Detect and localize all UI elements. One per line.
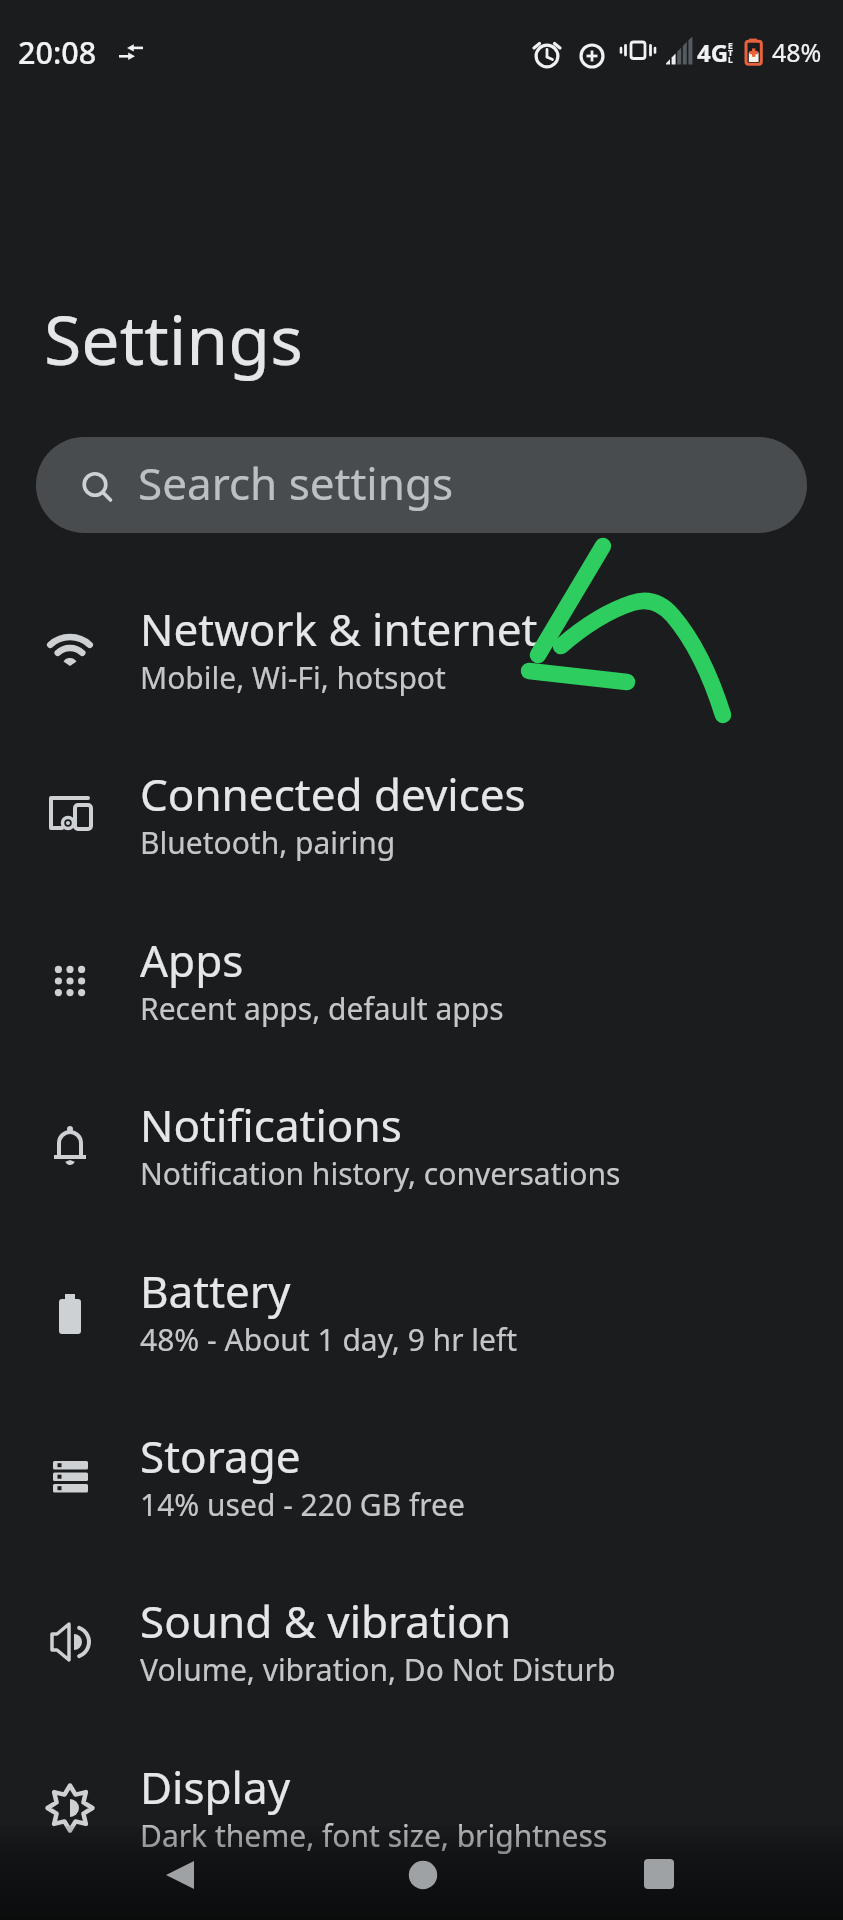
- staticText: Search settings: [138, 453, 454, 513]
- staticText: Storage: [140, 1426, 301, 1486]
- staticText: Notification history, conversations: [140, 1153, 621, 1194]
- staticText: Bluetooth, pairing: [140, 822, 396, 863]
- staticText: Settings: [44, 292, 303, 385]
- staticText: Display: [140, 1757, 291, 1817]
- button[interactable]: Notifications: [0, 1067, 843, 1232]
- staticText: Sound & vibration: [140, 1591, 512, 1651]
- button[interactable]: Storage: [0, 1398, 843, 1563]
- staticText: Connected devices: [140, 764, 526, 824]
- staticText: Mobile, Wi-Fi, hotspot: [140, 657, 446, 698]
- button[interactable]: Apps: [0, 902, 843, 1067]
- button[interactable]: [562, 1826, 843, 1920]
- staticText: E T L: [728, 40, 733, 66]
- button[interactable]: Battery: [0, 1233, 843, 1398]
- staticText: Recent apps, default apps: [140, 988, 504, 1029]
- button[interactable]: Sound & vibration: [0, 1563, 843, 1728]
- staticText: Dark theme, font size, brightness: [140, 1815, 608, 1856]
- staticText: Battery: [140, 1261, 291, 1321]
- staticText: 20:08: [18, 31, 97, 73]
- staticText: Apps: [140, 930, 244, 990]
- button[interactable]: Connected devices: [0, 736, 843, 901]
- button[interactable]: Network & internet: [0, 571, 843, 736]
- button[interactable]: Search settings: [36, 437, 807, 533]
- button[interactable]: [281, 1826, 562, 1920]
- staticText: 48% - About 1 day, 9 hr left: [140, 1319, 518, 1360]
- button[interactable]: [0, 1826, 281, 1920]
- staticText: Notifications: [140, 1095, 402, 1155]
- staticText: Network & internet: [140, 599, 538, 659]
- staticText: 14% used - 220 GB free: [140, 1484, 465, 1525]
- button[interactable]: Display: [0, 1729, 843, 1894]
- staticText: 4G: [697, 36, 729, 69]
- staticText: Volume, vibration, Do Not Disturb: [140, 1649, 616, 1690]
- staticText: 48%: [772, 35, 822, 69]
